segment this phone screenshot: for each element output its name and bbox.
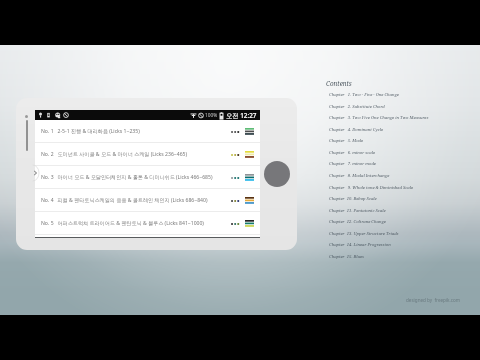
staticText: Chapter 12. Coltrane Change bbox=[329, 219, 386, 225]
staticText: Chapter 6. minor scale bbox=[329, 150, 376, 156]
button[interactable]: Chapter 8. Modal Interchange bbox=[329, 173, 390, 184]
staticText: Chapter 11. Pentatonic Scale bbox=[329, 208, 386, 214]
staticText: No. 1 2-5-1 진행 & 대리화음 (Licks 1~235) bbox=[41, 128, 140, 135]
button[interactable]: Chapter 6. minor scale bbox=[329, 150, 376, 161]
button[interactable]: Chapter 5. Mode bbox=[329, 138, 364, 149]
button[interactable]: Chapter 13. Upper Structure Triads bbox=[329, 231, 399, 242]
button[interactable]: Chapter 2. Substitute Chord bbox=[329, 104, 385, 115]
staticText: Chapter 7. minor mode bbox=[329, 161, 376, 167]
staticText: Chapter 8. Modal Interchange bbox=[329, 173, 390, 179]
staticText: designed by freepik.com bbox=[406, 297, 461, 303]
button[interactable]: Chapter 4. Dominant Cycle bbox=[329, 127, 384, 138]
button[interactable]: Open navigation drawer bbox=[31, 165, 39, 181]
button[interactable]: Chapter 7. minor mode bbox=[329, 161, 376, 172]
staticText: No. 5 어퍼스트럭쳐 트라이어드 & 펜탄토닉 & 블루스 (Licks 8… bbox=[41, 220, 204, 227]
button[interactable]: Chapter 12. Coltrane Change bbox=[329, 219, 386, 230]
staticText: Chapter 1. Two - Five - One Change bbox=[329, 92, 399, 98]
staticText: Chapter 13. Upper Structure Triads bbox=[329, 231, 399, 237]
button[interactable]: Home bbox=[264, 161, 290, 187]
button[interactable]: Chapter 9. Whole tone & Diminished Scale bbox=[329, 185, 414, 196]
button[interactable]: Chapter 10. Bebop Scale bbox=[329, 196, 377, 207]
button[interactable]: Chapter 11. Pentatonic Scale bbox=[329, 208, 386, 219]
staticText: No. 4 피컬 & 펜타토닉스케일의 응용 & 콜트레인 체인지 (Licks… bbox=[41, 197, 208, 204]
staticText: No. 3 마이너 모드 & 모달인터체인지 & 홀톤 & 디미니쉬드 (Lic… bbox=[41, 174, 213, 181]
staticText: Chapter 9. Whole tone & Diminished Scale bbox=[329, 185, 414, 191]
staticText: Chapter 15. Blues bbox=[329, 254, 365, 260]
staticText: Chapter 2. Substitute Chord bbox=[329, 104, 385, 110]
button[interactable]: No. 2 도미넌트 사이클 & 모드 & 마이너 스케일 (Licks 236… bbox=[35, 143, 260, 166]
staticText: Chapter 3. Two Five One Change in Two Me… bbox=[329, 115, 429, 121]
button[interactable]: No. 4 피컬 & 펜타토닉스케일의 응용 & 콜트레인 체인지 (Licks… bbox=[35, 189, 260, 212]
button[interactable]: Chapter 15. Blues bbox=[329, 254, 365, 265]
staticText: No. 2 도미넌트 사이클 & 모드 & 마이너 스케일 (Licks 236… bbox=[41, 151, 188, 158]
staticText: Contents bbox=[326, 79, 352, 88]
button[interactable]: No. 1 2-5-1 진행 & 대리화음 (Licks 1~235) bbox=[35, 120, 260, 143]
staticText: 오전 12:27 bbox=[226, 111, 257, 120]
staticText: 100% bbox=[205, 112, 218, 119]
button[interactable]: Chapter 3. Two Five One Change in Two Me… bbox=[329, 115, 429, 126]
button[interactable]: No. 3 마이너 모드 & 모달인터체인지 & 홀톤 & 디미니쉬드 (Lic… bbox=[35, 166, 260, 189]
staticText: Chapter 5. Mode bbox=[329, 138, 364, 144]
staticText: Chapter 10. Bebop Scale bbox=[329, 196, 377, 202]
button[interactable]: Chapter 1. Two - Five - One Change bbox=[329, 92, 399, 103]
button[interactable]: No. 5 어퍼스트럭쳐 트라이어드 & 펜탄토닉 & 블루스 (Licks 8… bbox=[35, 212, 260, 235]
button[interactable]: Chapter 14. Linear Progression bbox=[329, 242, 391, 253]
staticText: Chapter 14. Linear Progression bbox=[329, 242, 391, 248]
staticText: Chapter 4. Dominant Cycle bbox=[329, 127, 384, 133]
